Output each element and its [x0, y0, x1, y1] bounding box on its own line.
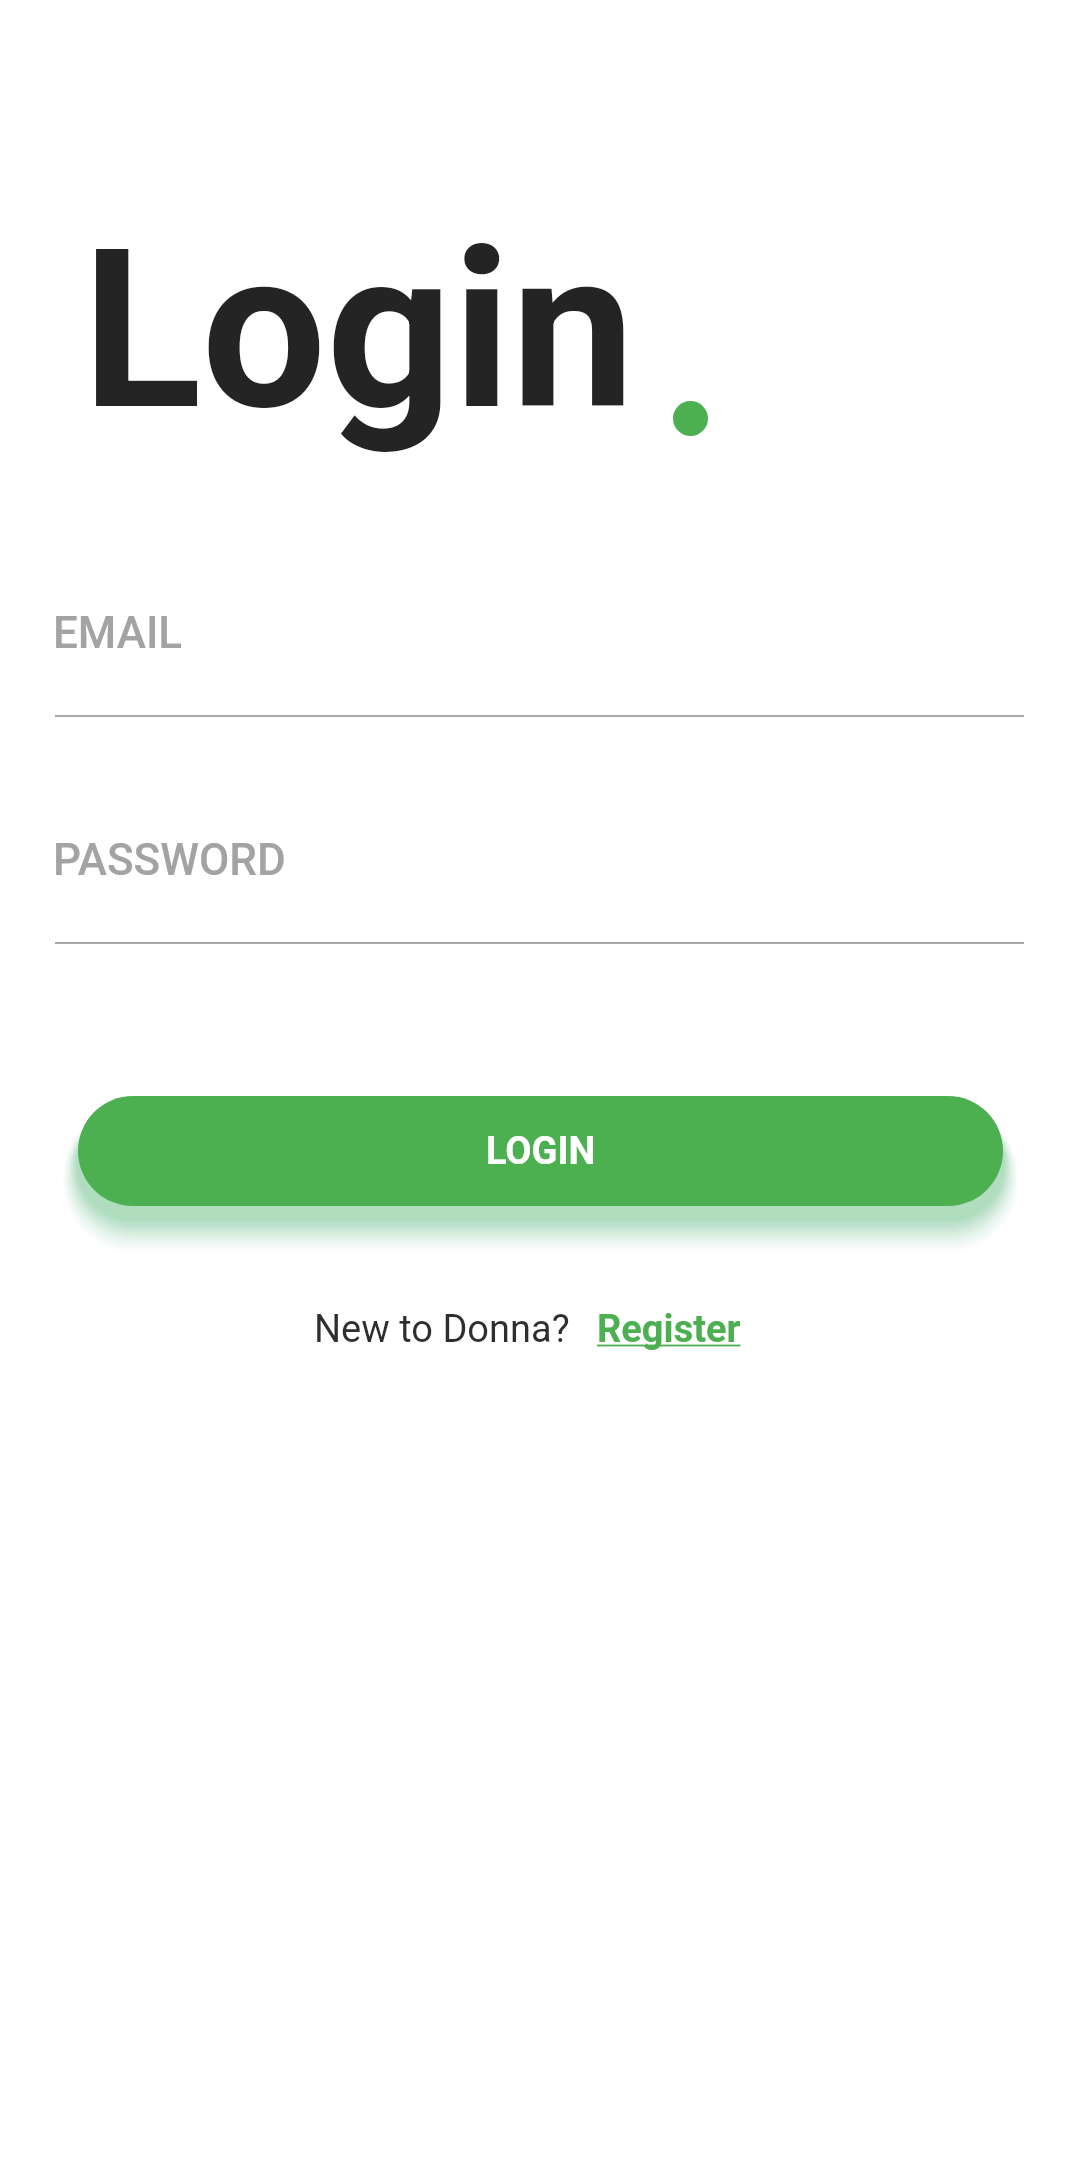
staticText: Login [82, 201, 635, 460]
button[interactable]: Password input field [55, 824, 1024, 946]
button[interactable]: LOGIN [78, 1096, 1003, 1206]
staticText: LOGIN [486, 1129, 596, 1174]
staticText: EMAIL [53, 607, 183, 659]
staticText: PASSWORD [53, 834, 286, 886]
button[interactable]: Email input field [55, 597, 1024, 719]
staticText: Register [597, 1307, 741, 1352]
staticText: New to Donna? [314, 1307, 570, 1352]
button[interactable]: Register [597, 1307, 741, 1352]
